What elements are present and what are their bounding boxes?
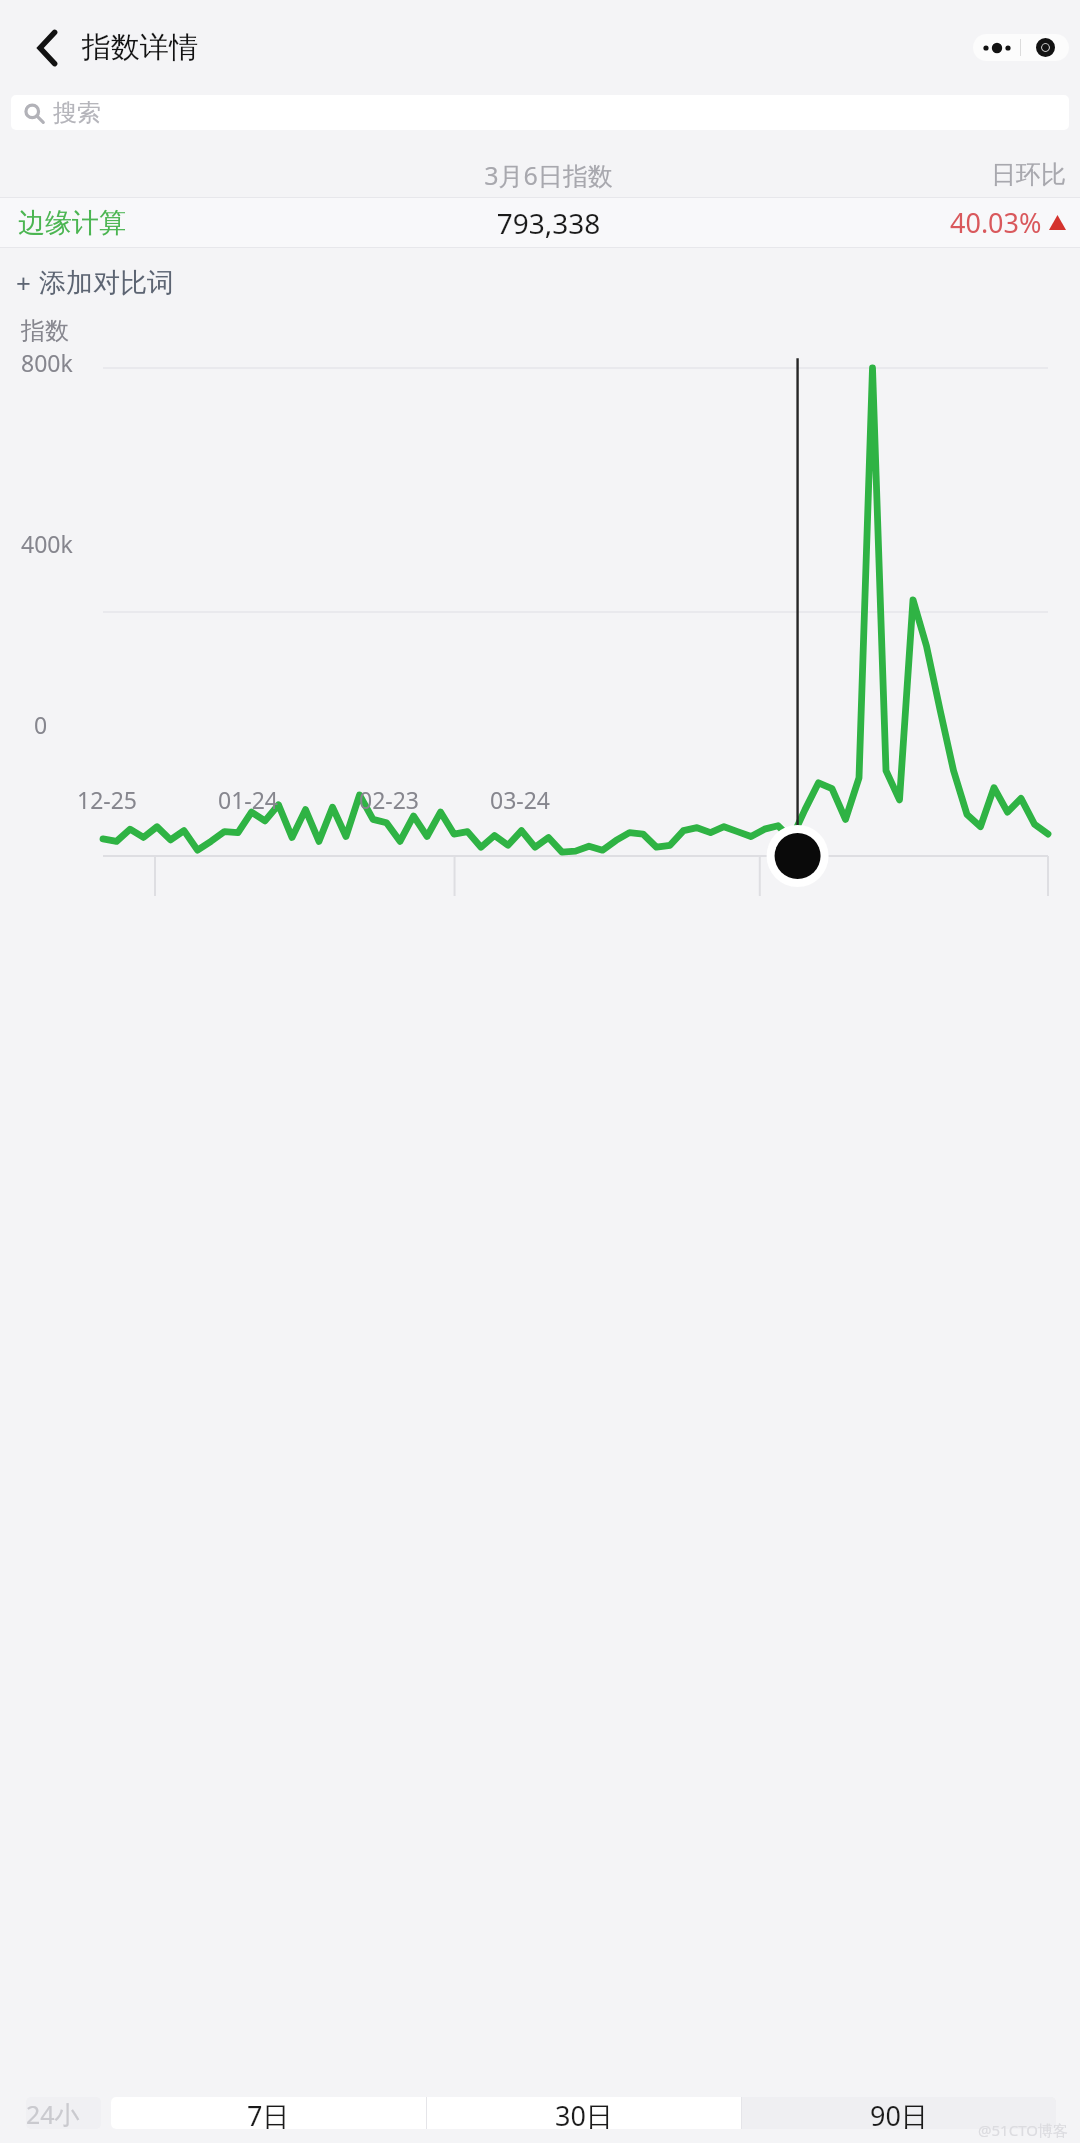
staticText: 12-25 [77,784,138,815]
staticText: 02-23 [359,784,420,815]
staticText: 03-24 [490,784,551,815]
staticText: 指数 [21,316,69,346]
button[interactable]: 搜索 [11,95,1069,130]
staticText: + [16,265,31,300]
staticText: 添加对比词 [39,266,174,300]
staticText: 400k [21,528,73,559]
staticText: 24小时 [26,2097,101,2129]
staticText: 40.03% [950,204,1042,241]
staticText: 3月6日指数 [343,158,754,192]
button[interactable]: 90日 [742,2097,1056,2129]
staticText: 800k [21,347,73,378]
button[interactable]: Close [1021,34,1069,61]
staticText: 指数详情 [82,29,198,66]
button[interactable]: 7日 [111,2097,426,2129]
staticText: 搜索 [53,98,101,128]
button[interactable]: 30日 [427,2097,741,2129]
staticText: @51CTO博客 [978,2120,1068,2140]
staticText: 90日 [870,2097,928,2129]
button[interactable]: + [16,265,174,300]
staticText: 30日 [555,2097,613,2129]
button[interactable]: 边缘计算 [0,198,1080,247]
button[interactable]: More options [973,34,1020,61]
staticText: 7日 [247,2097,290,2129]
staticText: 01-24 [218,784,279,815]
staticText: 日环比 [754,159,1066,190]
staticText: 边缘计算 [18,206,343,240]
staticText: 0 [34,709,48,740]
button[interactable]: Back [16,20,72,76]
staticText: 793,338 [343,204,754,242]
button[interactable]: 24小时 [26,2097,101,2129]
